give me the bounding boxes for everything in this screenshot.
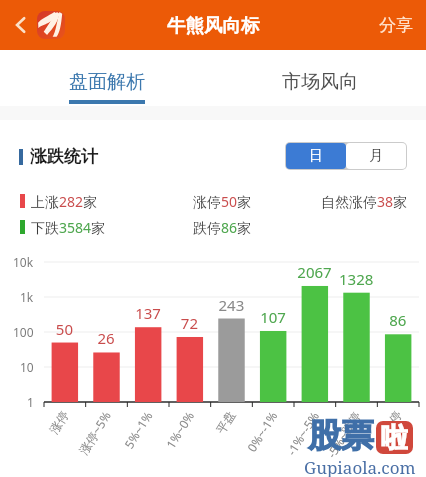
staticText: 月	[369, 147, 383, 165]
staticText: 下跌3584家	[31, 218, 106, 237]
staticText: Gupiaola.com	[304, 456, 416, 477]
button[interactable]: Back	[6, 10, 36, 40]
staticText: 盘面解析	[69, 70, 145, 94]
staticText: 自然涨停38家	[321, 192, 408, 211]
staticText: 牛熊风向标	[167, 14, 260, 37]
button[interactable]: 日	[286, 143, 346, 169]
staticText: 涨跌统计	[30, 146, 98, 167]
button[interactable]: App logo	[37, 11, 65, 39]
button[interactable]: 盘面解析	[0, 50, 213, 107]
button[interactable]: 分享	[366, 3, 426, 48]
staticText: 分享	[379, 15, 413, 36]
button[interactable]: 月	[346, 143, 406, 169]
staticText: 市场风向	[282, 70, 358, 94]
staticText: 股票	[308, 415, 374, 457]
staticText: 啦	[381, 421, 408, 454]
button[interactable]: 市场风向	[213, 50, 426, 107]
staticText: 跌停86家	[193, 218, 252, 237]
staticText: 涨停50家	[193, 192, 252, 211]
staticText: 日	[309, 147, 323, 165]
staticText: 上涨282家	[31, 192, 98, 211]
